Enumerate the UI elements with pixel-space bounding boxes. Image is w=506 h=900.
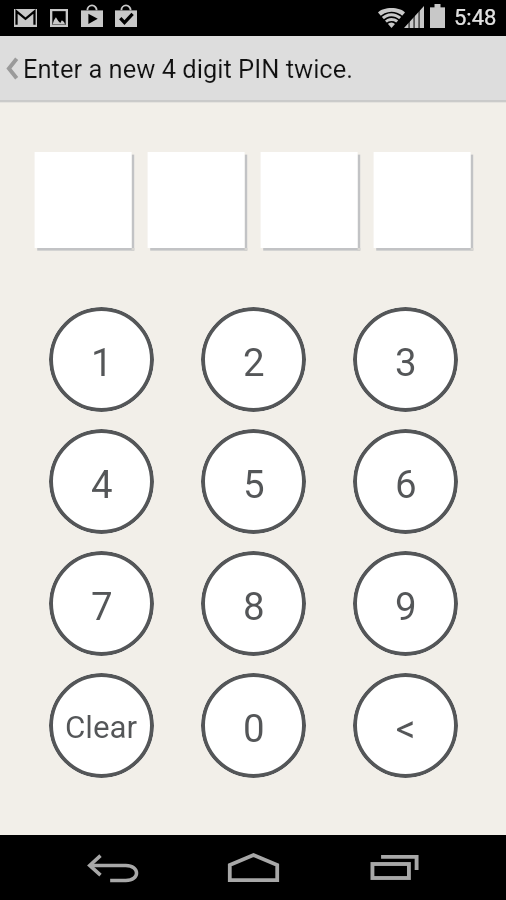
button[interactable]: Clear: [49, 673, 154, 778]
button[interactable]: Recent apps: [359, 835, 431, 900]
button[interactable]: 5: [201, 429, 306, 534]
button[interactable]: 7: [49, 551, 154, 656]
staticText: 7: [91, 584, 113, 629]
staticText: 5: [243, 462, 265, 507]
staticText: <: [396, 706, 416, 751]
staticText: Enter a new 4 digit PIN twice.: [23, 54, 353, 84]
staticText: 6: [395, 462, 417, 507]
staticText: 9: [395, 584, 417, 629]
staticText: 8: [243, 584, 265, 629]
button[interactable]: Back: [76, 835, 148, 900]
staticText: 3: [395, 340, 417, 385]
button[interactable]: 4: [49, 429, 154, 534]
staticText: Clear: [65, 709, 138, 746]
button[interactable]: 2: [201, 307, 306, 412]
button[interactable]: <: [353, 673, 458, 778]
staticText: 0: [243, 706, 265, 751]
staticText: 4: [91, 462, 113, 507]
button[interactable]: Home: [217, 835, 289, 900]
button[interactable]: 9: [353, 551, 458, 656]
staticText: 1: [91, 340, 113, 385]
button[interactable]: Enter a new 4 digit PIN twice.: [0, 36, 506, 100]
staticText: 2: [243, 340, 265, 385]
button[interactable]: 0: [201, 673, 306, 778]
button[interactable]: 6: [353, 429, 458, 534]
button[interactable]: 1: [49, 307, 154, 412]
staticText: 5:48: [454, 5, 497, 31]
button[interactable]: 3: [353, 307, 458, 412]
button[interactable]: 8: [201, 551, 306, 656]
